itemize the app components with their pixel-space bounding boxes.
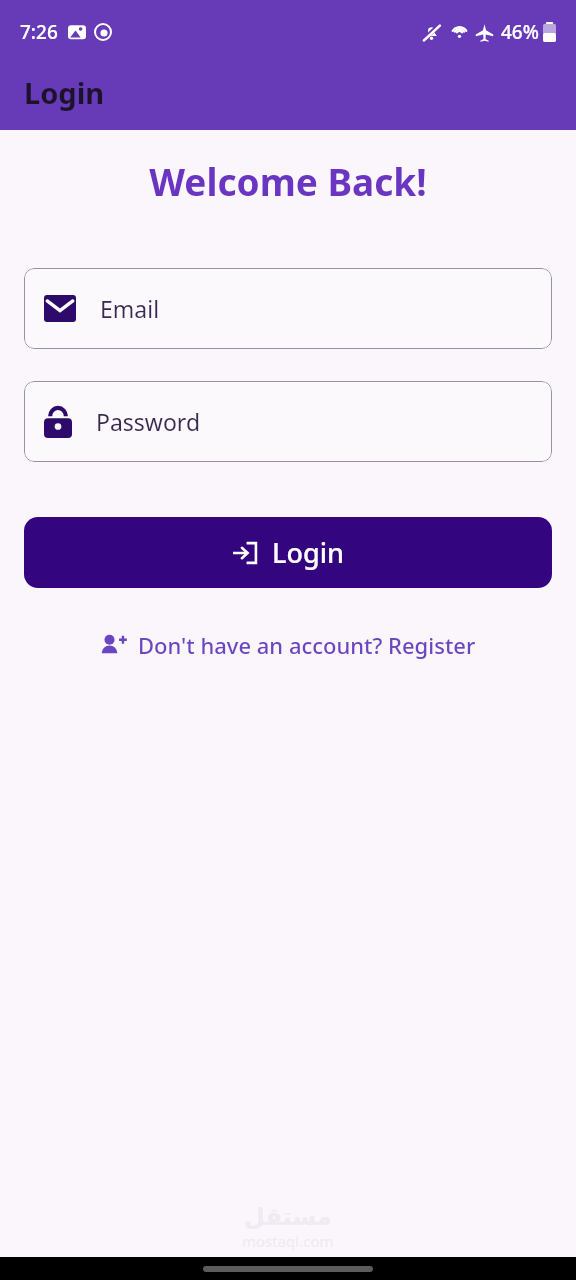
staticText: 7:26	[20, 19, 58, 45]
staticText: 46%	[501, 19, 539, 45]
button[interactable]: Password	[24, 381, 552, 462]
button[interactable]: Email	[24, 268, 552, 349]
staticText: Login	[24, 73, 105, 112]
staticText: Don't have an account? Register	[138, 630, 476, 660]
staticText: مستقل	[244, 1203, 332, 1231]
staticText: Welcome Back!	[0, 156, 576, 206]
button[interactable]: Don't have an account? Register	[90, 624, 486, 666]
button[interactable]: Login	[24, 517, 552, 588]
staticText: Login	[272, 534, 344, 571]
staticText: Password	[96, 406, 201, 437]
staticText: mostaql.com	[242, 1231, 334, 1251]
staticText: Email	[100, 293, 160, 324]
